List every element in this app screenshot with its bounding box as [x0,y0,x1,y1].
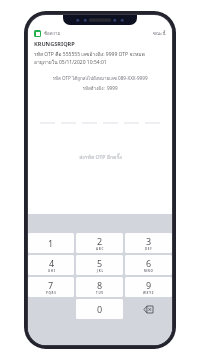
staticText: 5 [97,257,103,269]
button[interactable]: ส่งรหัส OTP อีกครั้ง [28,150,172,164]
button[interactable]: Backspace [125,299,172,319]
staticText: KRUNGSRIQRP [34,40,75,48]
staticText: W X Y Z [143,291,154,295]
button[interactable]: 2 [76,233,123,253]
staticText: 2 [97,235,103,247]
staticText: A B C [96,247,104,251]
staticText: 3 [146,235,152,247]
button[interactable]: 4 [28,255,74,275]
staticText: D E F [145,247,152,251]
staticText: 9 [146,279,152,291]
staticText: T U V [96,291,104,295]
button[interactable]: 3 [125,233,172,253]
staticText: M N O [144,269,153,273]
staticText: 0 [97,303,103,315]
staticText: J K L [97,269,103,273]
staticText: อายุภายใน 05/11/2020 10:54:01 [34,58,107,66]
staticText: รหัสอ้างอิง: 9999 [82,85,118,92]
button[interactable]: 0 [76,299,123,319]
staticText: ส่งรหัส OTP อีกครั้ง [79,153,122,161]
staticText: 4 [49,257,55,269]
button[interactable]: 6 [125,255,172,275]
staticText: ข้อความ [44,30,61,37]
button[interactable]: 5 [76,255,123,275]
button[interactable]: 1 [28,233,74,253]
staticText: P Q R S [46,291,56,295]
staticText: รหัส OTP ได้ถูกส่งไปยังหมายเลข 089-XXX-9… [52,75,148,82]
staticText: 6 [146,257,152,269]
staticText: รหัส OTP คือ 555555 เลขอ้างอิง: 9999 OTP… [34,50,145,58]
button[interactable]: 9 [125,277,172,297]
button[interactable]: 7 [28,277,74,297]
staticText: 1 [48,237,54,249]
staticText: 7 [48,279,54,291]
button[interactable]: 8 [76,277,123,297]
staticText: 8 [97,279,103,291]
staticText: ขณะนี้ [153,30,166,37]
staticText: G H I [48,269,55,273]
